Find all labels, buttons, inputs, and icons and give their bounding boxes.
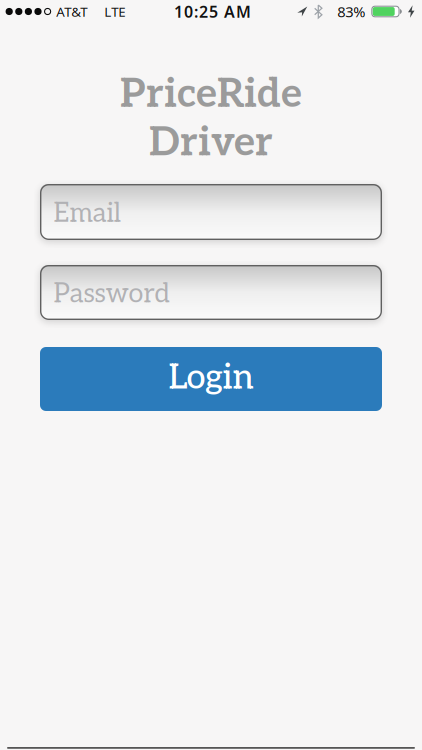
staticText: PriceRide xyxy=(120,70,302,118)
staticText: 83% xyxy=(337,2,365,21)
staticText: Driver xyxy=(149,119,273,167)
staticText: LTE xyxy=(104,3,125,20)
button[interactable]: Email xyxy=(40,184,382,240)
staticText: Email xyxy=(53,197,120,230)
staticText: Password xyxy=(53,278,169,310)
button[interactable]: Password xyxy=(40,265,382,320)
staticText: AT&T xyxy=(56,3,87,20)
staticText: 10:25 AM xyxy=(174,1,251,22)
button[interactable]: Login xyxy=(40,347,382,411)
staticText: Login xyxy=(168,357,253,398)
